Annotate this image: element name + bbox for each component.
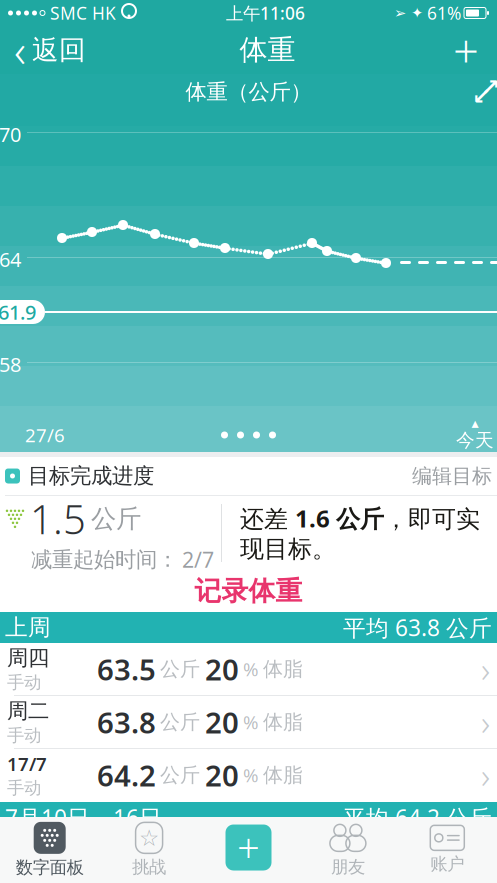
staticText: 64.2 [97, 755, 156, 794]
staticText: 手动 [7, 672, 41, 693]
staticText: › [481, 699, 490, 745]
staticText: 体脂 [263, 657, 303, 681]
button[interactable]: 添加 [435, 28, 497, 72]
staticText: + [237, 821, 260, 874]
staticText: ➢ [394, 5, 406, 21]
button[interactable]: 记录体重 [0, 570, 497, 612]
staticText: 公斤 [160, 763, 200, 787]
button[interactable]: 编辑目标 [412, 464, 492, 488]
staticText: 体脂 [263, 710, 303, 734]
staticText: 上周 [5, 614, 51, 641]
staticText: 64 [0, 246, 21, 273]
staticText: 数字面板 [16, 857, 84, 878]
staticText: 1.5 [30, 492, 86, 545]
staticText: 16/7 [7, 835, 47, 860]
staticText: 公斤 [160, 710, 200, 734]
button[interactable]: 周四 [0, 643, 497, 696]
staticText: + [453, 20, 479, 80]
staticText: 体重（公斤） [185, 79, 311, 105]
button[interactable]: 添加记录 [199, 817, 298, 883]
staticText: 上午11:06 [226, 1, 305, 24]
staticText: 公斤 [160, 847, 200, 871]
staticText: 公斤 [160, 657, 200, 681]
staticText: 账户 [430, 853, 464, 875]
staticText: 63.5 [97, 649, 156, 688]
staticText: 体脂 [263, 763, 303, 787]
staticText: ↗ [481, 75, 497, 100]
staticText: 平均 63.8 公斤 [343, 612, 492, 642]
staticText: 64.5 [97, 839, 156, 878]
staticText: 平均 64.2 公斤 [343, 802, 492, 832]
staticText: 61% [427, 1, 461, 24]
button[interactable]: 朋友 [298, 817, 398, 883]
button[interactable]: 数字面板 [0, 817, 99, 883]
button[interactable]: 周二 [0, 696, 497, 749]
staticText: 周二 [7, 698, 49, 724]
staticText: 体重 [239, 33, 295, 67]
staticText: 17/7 [7, 751, 47, 776]
staticText: 手动 [7, 777, 41, 798]
staticText: 朋友 [331, 856, 365, 878]
staticText: 20 [205, 702, 239, 741]
staticText: 手动 [7, 725, 41, 746]
staticText: 20 [205, 649, 239, 688]
staticText: SMC HK [45, 1, 116, 24]
button[interactable]: 全屏 [464, 74, 497, 110]
staticText: 减重起始时间： [31, 546, 178, 573]
staticText: % [243, 847, 259, 871]
button[interactable]: 账户 [398, 817, 497, 883]
staticText: 挑战 [132, 856, 166, 878]
staticText: › [481, 752, 490, 798]
staticText: % [243, 710, 259, 734]
staticText: 目标完成进度 [28, 463, 154, 489]
staticText: % [243, 763, 259, 787]
staticText: 63.8 [97, 702, 156, 741]
staticText: 58 [0, 351, 21, 378]
staticText: 61.9 [0, 299, 36, 325]
button[interactable]: 17/7 [0, 749, 497, 802]
staticText: 27/6 [25, 423, 65, 447]
staticText: % [243, 657, 259, 681]
staticText: 今天 [456, 429, 494, 452]
staticText: ‹ [14, 20, 26, 80]
staticText: 返回 [32, 34, 86, 66]
staticText: ☆ [139, 825, 159, 851]
staticText: 记录体重 [194, 575, 302, 607]
button[interactable]: ☆ [99, 817, 199, 883]
staticText: 还差 1.6 公斤，即可实现目标。 [240, 502, 480, 564]
staticText: ▲ [471, 418, 478, 429]
staticText: ↙ [472, 84, 491, 109]
staticText: 2/7 [182, 545, 214, 574]
staticText: ✦ [411, 5, 423, 21]
staticText: 手动 [7, 861, 41, 882]
staticText: 20 [205, 839, 239, 878]
staticText: 编辑目标 [412, 464, 492, 488]
staticText: 周四 [7, 645, 49, 671]
staticText: › [481, 646, 490, 692]
staticText: 7月10日 – 16日 [5, 802, 162, 832]
button[interactable]: 16/7 [0, 833, 497, 883]
button[interactable]: ‹ [0, 28, 100, 72]
staticText: 70 [0, 121, 21, 148]
staticText: 体脂 [263, 847, 303, 871]
staticText: 公斤 [91, 503, 141, 534]
staticText: 20 [205, 755, 239, 794]
